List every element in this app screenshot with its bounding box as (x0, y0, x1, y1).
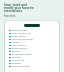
button[interactable]: Listening (5, 56, 59, 59)
button[interactable]: Vocabulary builder set (5, 38, 59, 41)
staticText: Quick practice (12, 44, 26, 47)
staticText: Conversation starters (12, 53, 33, 56)
staticText: Favorites (4, 14, 16, 18)
staticText: Save, track and model your favorite tran… (4, 3, 34, 13)
staticText: Daily translation log (12, 32, 31, 35)
staticText: Phrases (12, 41, 20, 44)
button[interactable]: Phrases (5, 41, 59, 44)
staticText: Reading (12, 50, 20, 53)
button[interactable]: Quick practice (5, 44, 59, 47)
staticText: Evening session (12, 47, 27, 50)
staticText: Vocabulary builder set (12, 38, 33, 41)
button[interactable]: Conversation starters (5, 53, 59, 56)
button[interactable]: Daily translation log (5, 32, 59, 35)
staticText: Morning routine (12, 29, 28, 32)
button[interactable]: Weekly review (5, 35, 59, 38)
button[interactable]: Reading (5, 50, 59, 53)
staticText: Writing drills (12, 59, 24, 62)
button[interactable]: Grammar (5, 62, 59, 65)
button[interactable] (24, 24, 40, 27)
staticText: Listening (12, 56, 21, 59)
staticText: Grammar (12, 62, 22, 65)
button[interactable]: Morning routine (5, 29, 59, 32)
button[interactable]: Evening session (5, 47, 59, 50)
button[interactable]: Writing drills (5, 59, 59, 62)
staticText: Pronunciation tips (12, 65, 30, 68)
button[interactable]: Pronunciation tips (5, 65, 59, 68)
staticText: Weekly review (12, 35, 26, 38)
